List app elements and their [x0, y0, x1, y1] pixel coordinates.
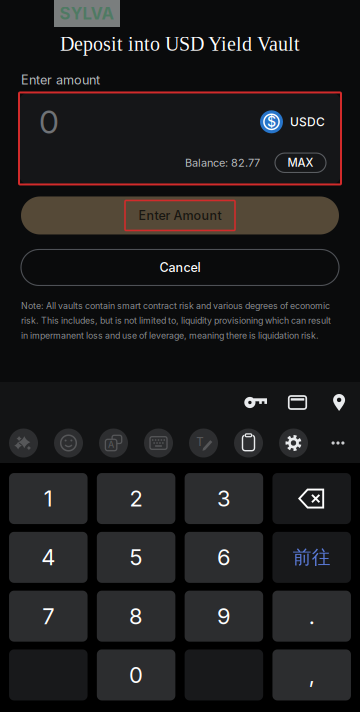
staticText: 9	[217, 603, 231, 629]
button[interactable]: 4	[9, 532, 88, 583]
staticText: USDC	[290, 115, 325, 129]
button[interactable]: .	[272, 591, 351, 642]
staticText: Balance: 82.77	[185, 156, 260, 169]
button[interactable]: Writing tools	[1, 426, 46, 460]
staticText: 5	[130, 544, 143, 571]
staticText: Note: All vaults contain smart contract …	[21, 300, 331, 341]
staticText: Enter Amount	[138, 208, 221, 223]
button[interactable]: 1	[9, 473, 88, 524]
button[interactable]: Delete	[272, 473, 351, 524]
button[interactable]: MAX	[275, 153, 326, 172]
button[interactable]: Translate	[91, 426, 136, 460]
staticText: T	[196, 435, 203, 449]
button[interactable]: 8	[97, 591, 175, 642]
staticText: A	[108, 439, 114, 450]
staticText: 6	[217, 544, 231, 571]
button[interactable]: 5	[97, 532, 175, 583]
button[interactable]: Cancel	[21, 249, 339, 285]
staticText: 0	[129, 662, 143, 688]
staticText: SYLVA	[59, 3, 114, 24]
button[interactable]: Location	[315, 391, 355, 413]
staticText: MAX	[287, 156, 313, 170]
button[interactable]: 0	[97, 649, 175, 700]
staticText: .	[309, 603, 315, 629]
button[interactable]: 6	[185, 532, 263, 583]
staticText: Enter amount	[21, 72, 100, 87]
staticText: 1	[44, 485, 53, 512]
staticText: $	[267, 113, 276, 130]
staticText: ,	[309, 662, 315, 688]
button[interactable]: 3	[185, 473, 263, 524]
staticText: Deposit into USD Yield Vault	[60, 33, 300, 55]
button[interactable]: Settings	[271, 426, 316, 460]
staticText: 前往	[293, 546, 331, 569]
button[interactable]: 7	[9, 591, 88, 642]
button[interactable]: More	[324, 426, 360, 460]
button[interactable]: Paste	[226, 426, 271, 460]
button[interactable]: Credit card	[272, 391, 315, 413]
button[interactable]: ,	[272, 649, 351, 700]
staticText: 2	[130, 485, 143, 512]
button[interactable]: 2	[97, 473, 175, 524]
staticText: Cancel	[159, 260, 200, 275]
button[interactable]: Markup	[181, 426, 226, 460]
button[interactable]: Keyboard	[136, 426, 181, 460]
button[interactable]: Emoji	[46, 426, 91, 460]
staticText: 7	[42, 603, 54, 629]
button[interactable]: 9	[185, 591, 263, 642]
button[interactable]: Go	[272, 532, 351, 583]
staticText: 3	[217, 485, 231, 512]
button[interactable]: Enter Amount	[21, 196, 339, 234]
staticText: 8	[129, 603, 143, 629]
staticText: 0	[39, 102, 59, 141]
staticText: 4	[41, 544, 55, 571]
button[interactable]: Passwords	[233, 391, 272, 413]
